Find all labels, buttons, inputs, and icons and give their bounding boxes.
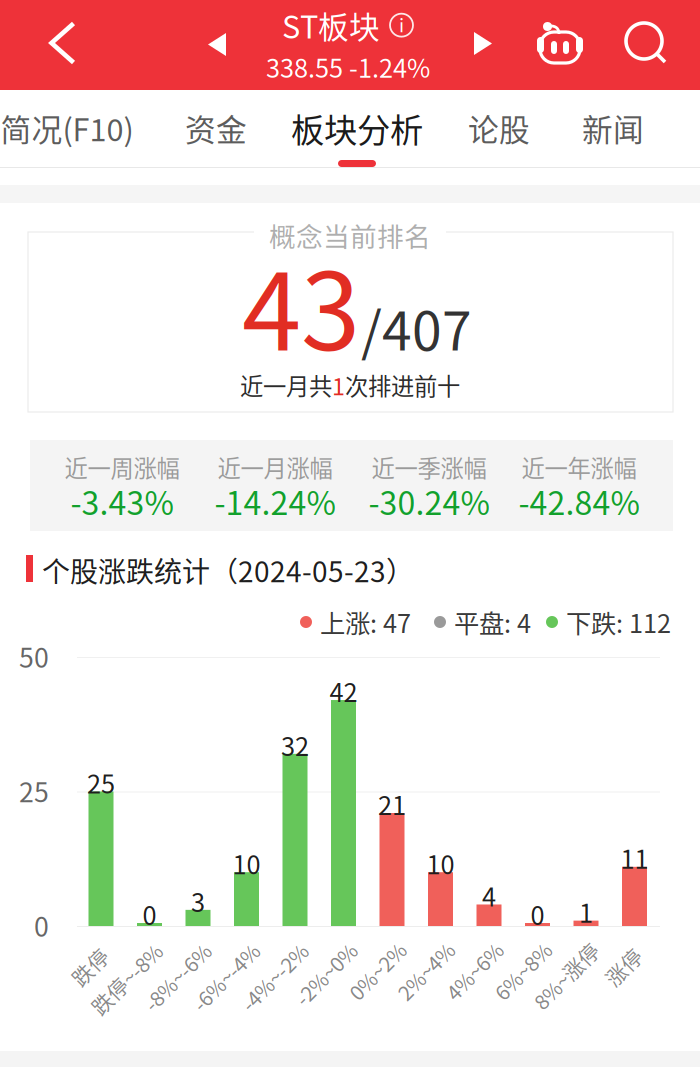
staticText: 上涨: 47 — [320, 604, 411, 640]
staticText: 论股 — [468, 106, 530, 150]
staticText: 0%~2% — [342, 956, 413, 986]
staticText: ST板块 — [282, 3, 380, 47]
staticText: 25 — [87, 764, 115, 801]
staticText: 4%~6% — [439, 956, 510, 986]
button[interactable]: 新闻 — [538, 90, 688, 168]
staticText: -14.24% — [214, 478, 335, 524]
staticText: 32 — [281, 726, 309, 763]
staticText: 25 — [19, 771, 49, 810]
button[interactable]: Back — [10, 0, 100, 90]
staticText: 个股涨跌统计（2024-05-23） — [42, 550, 414, 590]
staticText: 338.55 -1.24% — [266, 48, 430, 85]
staticText: 8%~涨停 — [525, 961, 608, 991]
staticText: 0 — [530, 896, 544, 932]
button[interactable]: 论股 — [424, 90, 574, 168]
button[interactable]: AI assistant — [524, 0, 598, 90]
staticText: 跌停 — [69, 952, 111, 982]
staticText: 50 — [19, 637, 49, 675]
staticText: -30.24% — [368, 478, 489, 524]
staticText: -3.43% — [70, 478, 173, 524]
staticText: 简况(F10) — [0, 106, 133, 150]
button[interactable]: 资金 — [141, 90, 291, 168]
button[interactable]: Search — [610, 0, 686, 90]
staticText: 4 — [482, 877, 496, 914]
staticText: i — [399, 11, 404, 38]
staticText: 新闻 — [582, 106, 644, 150]
button[interactable]: 简况(F10) — [0, 90, 142, 168]
staticText: 10 — [426, 845, 454, 882]
staticText: 21 — [378, 786, 406, 822]
staticText: 近一年涨幅 — [521, 450, 636, 484]
staticText: 1 — [579, 893, 593, 930]
staticText: 10 — [232, 845, 260, 882]
staticText: -8%~-6% — [135, 962, 220, 992]
staticText: 42 — [329, 673, 357, 709]
staticText: 1 — [332, 368, 345, 402]
staticText: 近一月涨幅 — [217, 450, 332, 484]
staticText: 下跌: 112 — [566, 604, 671, 640]
staticText: -4%~-2% — [232, 962, 317, 992]
staticText: 概念当前排名 — [269, 216, 431, 254]
button[interactable]: 板块分析 — [282, 90, 432, 168]
button[interactable]: Previous sector — [186, 0, 248, 90]
staticText: 2%~4% — [390, 956, 461, 986]
staticText: 跌停~-8% — [82, 964, 172, 994]
staticText: 近一周涨幅 — [64, 450, 179, 484]
staticText: 0 — [142, 896, 156, 932]
staticText: 6%~8% — [487, 956, 558, 986]
staticText: -6%~-4% — [183, 962, 268, 992]
staticText: 资金 — [185, 106, 247, 150]
staticText: 板块分析 — [291, 104, 423, 152]
staticText: /407 — [361, 289, 472, 366]
staticText: 43 — [242, 227, 360, 381]
button[interactable]: Next sector — [452, 0, 514, 90]
staticText: 次排进前十 — [345, 368, 460, 402]
staticText: -2%~0% — [287, 959, 365, 989]
staticText: -42.84% — [518, 478, 639, 524]
staticText: 涨停 — [602, 952, 644, 982]
staticText: 近一季涨幅 — [371, 450, 486, 484]
staticText: 平盘: 4 — [454, 604, 531, 640]
staticText: 11 — [620, 839, 648, 876]
staticText: 近一月共 — [240, 368, 332, 402]
staticText: 3 — [191, 882, 205, 919]
staticText: 0 — [34, 906, 49, 944]
